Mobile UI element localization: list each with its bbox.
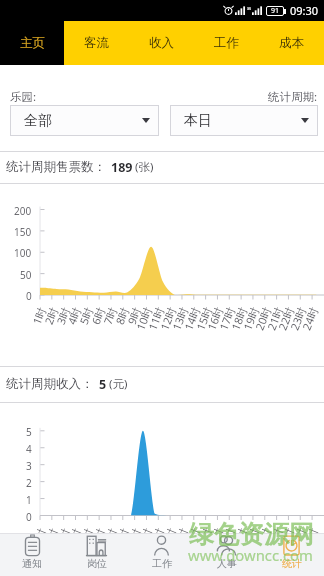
staticText: 150 — [14, 225, 32, 237]
staticText: 人事 — [217, 557, 237, 570]
staticText: 22时 — [274, 304, 296, 332]
staticText: 14时 — [180, 525, 202, 553]
staticText: 20时 — [251, 525, 273, 553]
staticText: 12时 — [156, 304, 178, 332]
staticText: 5时 — [76, 304, 95, 326]
staticText: 统计周期: — [268, 89, 318, 105]
staticText: 收入 — [149, 35, 174, 51]
staticText: 16时 — [203, 304, 225, 332]
staticText: 1时 — [29, 525, 48, 547]
staticText: 2 — [26, 476, 32, 488]
button[interactable]: 全部 — [10, 105, 159, 136]
staticText: 5 — [26, 425, 32, 437]
staticText: 10时 — [132, 304, 154, 332]
staticText: 5时 — [76, 525, 95, 547]
staticText: 17时 — [215, 525, 237, 553]
staticText: 21时 — [263, 525, 285, 553]
button[interactable]: 通知 — [0, 533, 64, 576]
staticText: 18时 — [227, 525, 249, 553]
staticText: 15时 — [192, 525, 214, 553]
button[interactable]: 工作 — [194, 21, 259, 65]
staticText: ³⁵ — [247, 7, 252, 15]
staticText: 统计 — [282, 557, 302, 570]
staticText: 16时 — [203, 525, 225, 553]
staticText: 0 — [26, 289, 32, 301]
staticText: 成本 — [279, 35, 304, 51]
staticText: 4 — [26, 442, 32, 454]
staticText: 4时 — [64, 304, 83, 326]
staticText: 20时 — [251, 304, 273, 332]
staticText: 工作 — [214, 35, 239, 51]
staticText: 乐园: — [10, 89, 37, 105]
staticText: 统计周期收入： — [6, 376, 94, 392]
staticText: 7时 — [100, 525, 119, 547]
staticText: 21时 — [263, 304, 285, 332]
button[interactable]: 人事 — [194, 533, 259, 576]
staticText: www.downcc.com — [188, 545, 313, 565]
button[interactable]: 主页 — [0, 21, 64, 65]
staticText: 19时 — [239, 304, 261, 332]
staticText: 2时 — [41, 525, 60, 547]
button[interactable]: 岗位 — [64, 533, 129, 576]
staticText: 24时 — [298, 525, 320, 553]
staticText: 8时 — [112, 304, 131, 326]
staticText: 18时 — [227, 304, 249, 332]
staticText: 客流 — [84, 35, 109, 51]
staticText: (元) — [109, 376, 128, 392]
staticText: 主页 — [20, 35, 45, 51]
staticText: 全部 — [24, 112, 52, 130]
staticText: 4时 — [64, 525, 83, 547]
staticText: 5 — [99, 376, 107, 393]
staticText: 13时 — [168, 304, 190, 332]
staticText: 09:30 — [290, 3, 319, 18]
staticText: 绿色资源网 — [189, 519, 314, 550]
staticText: 13时 — [168, 525, 190, 553]
button[interactable]: 成本 — [259, 21, 324, 65]
staticText: 工作 — [152, 557, 172, 570]
staticText: 200 — [14, 204, 32, 216]
staticText: 23时 — [286, 304, 308, 332]
staticText: 1 — [26, 493, 32, 505]
staticText: 3时 — [53, 525, 72, 547]
staticText: 7时 — [100, 304, 119, 326]
staticText: 189 — [111, 159, 133, 176]
staticText: 0 — [26, 510, 32, 522]
staticText: 22时 — [274, 525, 296, 553]
staticText: 17时 — [215, 304, 237, 332]
staticText: 9时 — [124, 304, 143, 326]
button[interactable]: 工作 — [129, 533, 194, 576]
staticText: 24时 — [298, 304, 320, 332]
staticText: 6时 — [88, 304, 107, 326]
staticText: 本日 — [184, 112, 212, 130]
button[interactable]: 统计 — [259, 533, 324, 576]
staticText: 2时 — [41, 304, 60, 326]
staticText: 3时 — [53, 304, 72, 326]
staticText: 岗位 — [87, 557, 107, 570]
staticText: 15时 — [192, 304, 214, 332]
staticText: 1时 — [29, 304, 48, 326]
staticText: 6时 — [88, 525, 107, 547]
staticText: 11时 — [144, 525, 166, 553]
button[interactable]: 客流 — [64, 21, 129, 65]
button[interactable]: 本日 — [170, 105, 318, 136]
staticText: 12时 — [156, 525, 178, 553]
staticText: (张) — [135, 159, 154, 175]
staticText: 通知 — [22, 557, 42, 570]
staticText: 3 — [26, 459, 32, 471]
staticText: 统计周期售票数： — [6, 159, 106, 175]
staticText: 19时 — [239, 525, 261, 553]
staticText: 100 — [14, 246, 32, 258]
button[interactable]: 收入 — [129, 21, 194, 65]
staticText: 50 — [20, 268, 32, 280]
staticText: 10时 — [132, 525, 154, 553]
staticText: 9时 — [124, 525, 143, 547]
staticText: 11时 — [144, 304, 166, 332]
staticText: 14时 — [180, 304, 202, 332]
staticText: 91 — [271, 6, 280, 16]
staticText: 8时 — [112, 525, 131, 547]
staticText: 23时 — [286, 525, 308, 553]
